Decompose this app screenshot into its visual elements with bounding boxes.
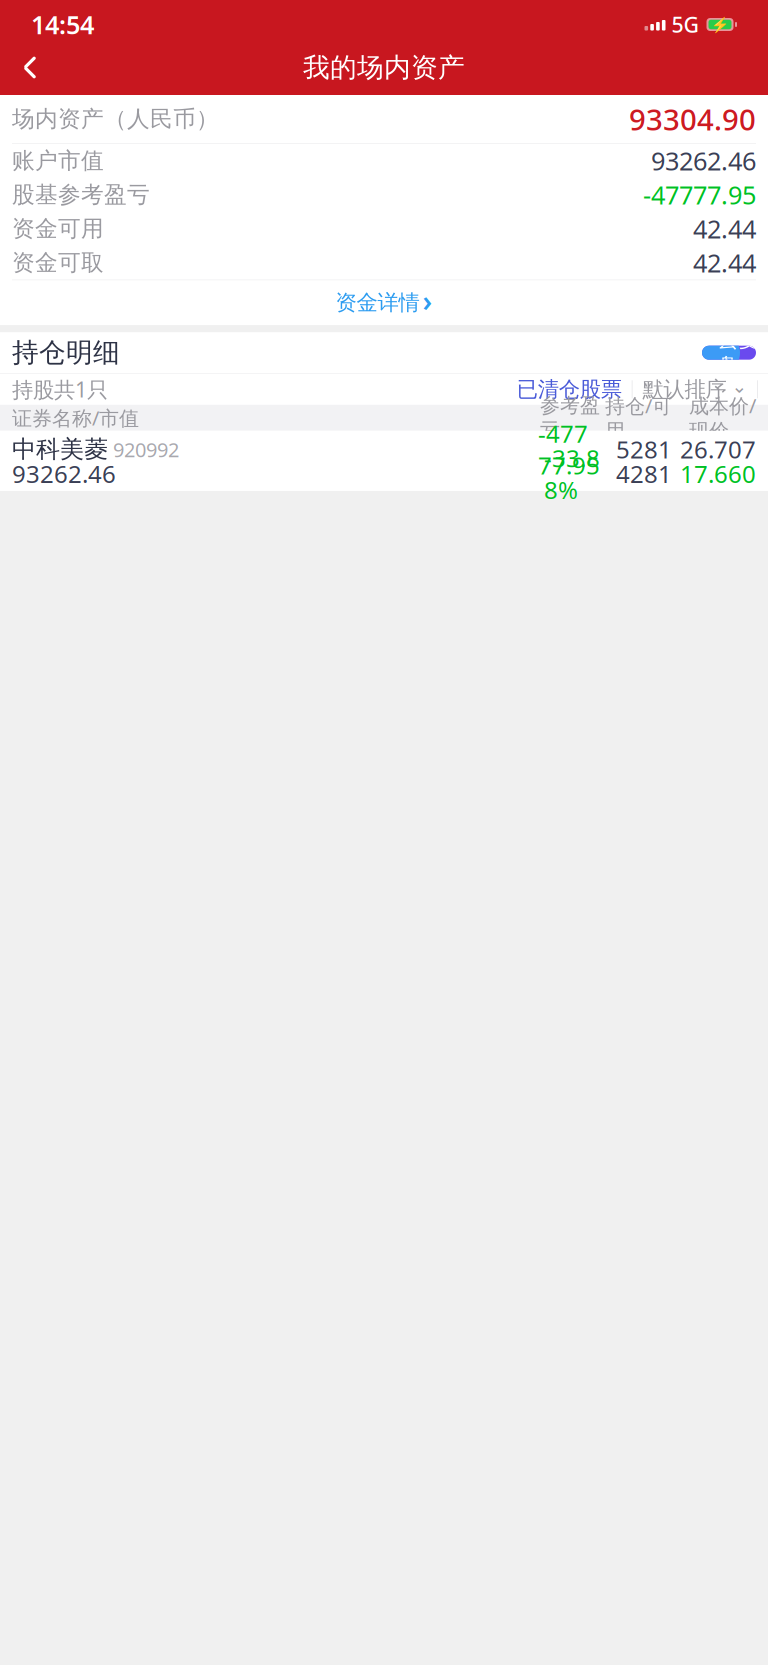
staticText: 股基参考盈亏	[12, 181, 150, 208]
staticText: -47777.95	[538, 417, 600, 481]
staticText: 42.44	[693, 246, 756, 279]
staticText: 中科美菱	[12, 435, 108, 464]
staticText: 成本价/现价	[689, 392, 756, 443]
staticText: 持仓明细	[12, 336, 120, 369]
staticText: 已清仓股票	[517, 376, 622, 402]
button[interactable]: 已清仓股票	[507, 376, 632, 402]
staticText: 42.44	[693, 212, 756, 245]
staticText: 资金可取	[12, 249, 104, 276]
staticText: 4281	[616, 458, 672, 490]
staticText: 5G	[671, 10, 699, 39]
staticText: 证券名称/市值	[12, 404, 139, 431]
staticText: 我的场内资产	[303, 51, 465, 84]
staticText: 持股共1只	[12, 375, 108, 403]
staticText: 93304.90	[629, 99, 756, 138]
staticText: 默认排序	[642, 376, 726, 402]
staticText: 14:54	[31, 8, 94, 41]
staticText: 93262.46	[12, 458, 116, 490]
staticText: 920992	[113, 436, 179, 463]
button[interactable]: 返回	[8, 47, 52, 87]
staticText: -33.88%	[544, 442, 600, 506]
button[interactable]: 中科美菱	[0, 431, 768, 491]
staticText: ›	[422, 282, 432, 319]
staticText: 17.660	[680, 458, 756, 490]
staticText: 5281	[616, 433, 672, 465]
staticText: 去复盘	[717, 326, 759, 379]
button[interactable]: 资金详情	[0, 280, 768, 325]
staticText: 参考盈亏	[540, 393, 600, 442]
button[interactable]: 默认排序	[632, 376, 757, 402]
staticText: 账户市值	[12, 147, 104, 174]
staticText: ⌄	[731, 376, 747, 397]
staticText: 场内资产（人民币）	[12, 105, 219, 133]
button[interactable]: 去复盘	[702, 346, 756, 360]
staticText: ⚡	[711, 16, 729, 33]
staticText: 持仓/可用	[605, 392, 672, 443]
staticText: 资金详情	[335, 290, 419, 316]
staticText: -47777.95	[643, 178, 756, 211]
staticText: 资金可用	[12, 215, 104, 242]
staticText: 93262.46	[651, 144, 756, 177]
staticText: 26.707	[680, 433, 756, 465]
